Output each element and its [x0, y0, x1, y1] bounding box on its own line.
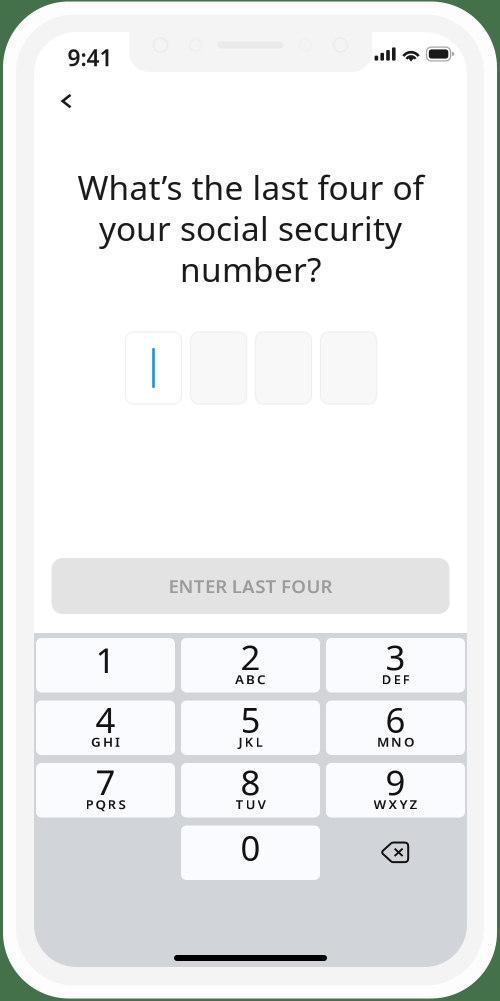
button[interactable]: 4 [36, 700, 175, 755]
staticText: 0 [240, 824, 260, 870]
staticText: 1 [95, 637, 115, 683]
staticText: N [179, 574, 194, 598]
staticText: D [381, 670, 391, 688]
button[interactable]: 6 [326, 700, 465, 755]
staticText: G [91, 733, 101, 750]
staticText: V [257, 795, 265, 813]
staticText: R [107, 795, 116, 813]
staticText: 5 [240, 696, 260, 742]
staticText: Y [399, 795, 407, 813]
staticText: 7 [95, 759, 115, 805]
staticText: W [373, 795, 386, 813]
staticText: A [235, 670, 244, 688]
staticText: P [85, 795, 93, 813]
staticText: T [194, 574, 205, 598]
staticText: E [205, 574, 215, 598]
staticText: X [388, 795, 397, 813]
button[interactable]: 2 [181, 638, 320, 692]
staticText: S [255, 574, 265, 598]
button[interactable]: 1 [36, 638, 175, 692]
staticText: U [306, 574, 320, 598]
staticText: L [232, 574, 242, 598]
button[interactable]: 8 [181, 763, 320, 817]
button[interactable]: 9 [326, 763, 465, 817]
staticText: 3 [385, 634, 405, 680]
staticText: B [246, 670, 255, 688]
staticText: your social security [99, 206, 402, 250]
staticText: F [402, 670, 409, 688]
staticText: N [391, 733, 402, 750]
button[interactable]: E [51, 558, 449, 614]
staticText: I [115, 733, 120, 750]
staticText: O [291, 574, 306, 598]
staticText: 4 [95, 696, 115, 742]
staticText: Z [409, 795, 417, 813]
button[interactable]: 3 [326, 638, 465, 692]
staticText: E [168, 574, 178, 598]
staticText: 2 [240, 634, 260, 680]
button[interactable]: Back [46, 80, 88, 122]
staticText: 6 [385, 696, 405, 742]
staticText: O [404, 733, 414, 750]
staticText: U [245, 795, 255, 813]
button[interactable]: 7 [36, 763, 175, 817]
staticText: M [377, 733, 389, 750]
staticText: S [118, 795, 125, 813]
button[interactable]: 0 [181, 825, 320, 880]
staticText: H [103, 733, 113, 750]
staticText: T [235, 795, 243, 813]
staticText: 9:41 [67, 42, 112, 72]
staticText: T [265, 574, 276, 598]
staticText: R [215, 574, 227, 598]
staticText: C [257, 670, 266, 688]
button[interactable]: Delete [326, 825, 465, 880]
staticText: R [321, 574, 333, 598]
staticText: 8 [240, 759, 260, 805]
staticText: L [255, 733, 262, 750]
staticText: What’s the last four of [77, 165, 423, 209]
staticText: E [393, 670, 400, 688]
staticText: number? [180, 247, 321, 291]
staticText: J [238, 733, 242, 750]
staticText: K [244, 733, 253, 750]
staticText: Q [95, 795, 105, 813]
staticText: A [242, 574, 255, 598]
staticText: F [281, 574, 291, 598]
button[interactable]: 5 [181, 700, 320, 755]
staticText: 9 [385, 759, 405, 805]
